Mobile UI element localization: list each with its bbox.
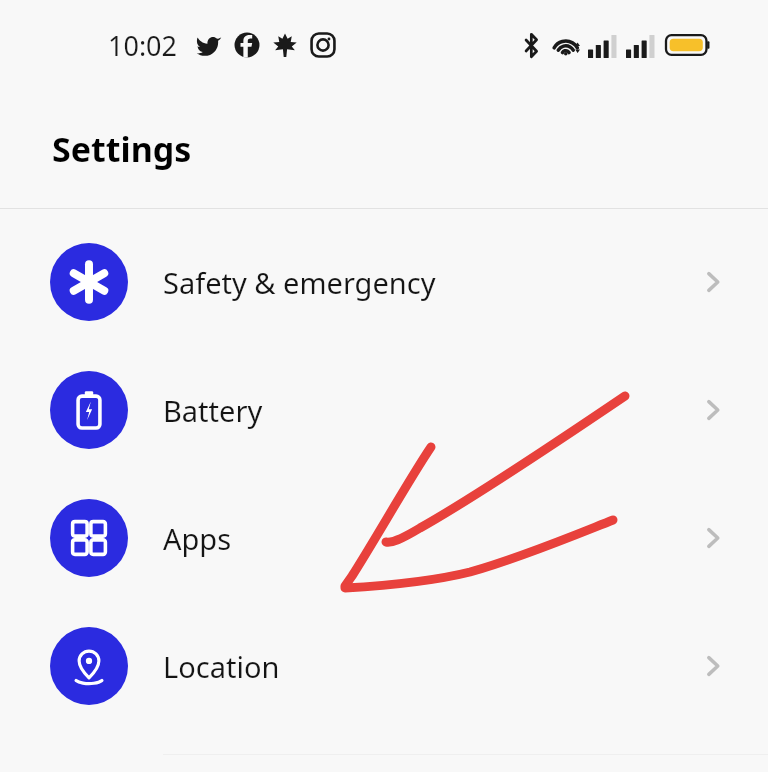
staticText: Battery: [163, 391, 698, 430]
button[interactable]: Apps: [0, 474, 768, 602]
staticText: Apps: [163, 519, 698, 558]
button[interactable]: Battery: [0, 346, 768, 474]
staticText: Settings: [52, 126, 192, 172]
button[interactable]: Location: [0, 602, 768, 730]
staticText: 10:02: [108, 27, 178, 64]
staticText: Location: [163, 647, 698, 686]
button[interactable]: Safety & emergency: [0, 218, 768, 346]
staticText: Safety & emergency: [163, 263, 698, 302]
